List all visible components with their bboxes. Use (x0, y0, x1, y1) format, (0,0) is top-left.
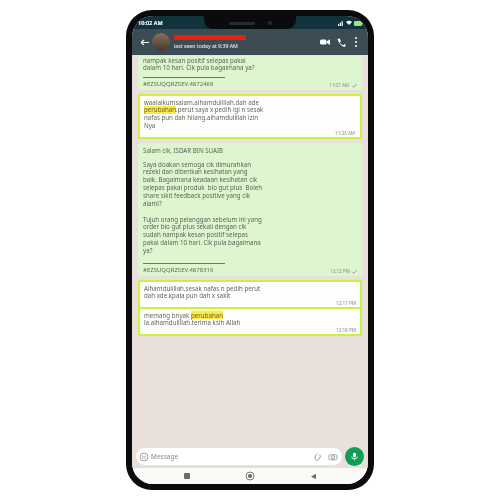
staticText: #EZSUQQRZSEV.4878316 (143, 266, 214, 274)
button[interactable]: Voice call (333, 34, 349, 50)
button[interactable]: last seen today at 9:39 AM (174, 35, 317, 49)
staticText: 12:12 PM (330, 268, 350, 274)
staticText: 10:02 AM (138, 19, 163, 27)
button[interactable]: Voice message (345, 447, 364, 466)
staticText: 11:23 AM (335, 130, 356, 136)
button[interactable]: Back (137, 35, 151, 49)
button[interactable]: nampak kesan positif selepas pakai dalam… (143, 56, 357, 88)
button[interactable]: Back (305, 468, 321, 484)
button[interactable]: More options (349, 35, 363, 49)
staticText: last seen today at 9:39 AM (174, 42, 238, 49)
staticText: 12:18 PM (336, 327, 356, 333)
staticText: memang bnyak perubahan la.alhamdulillah.… (144, 311, 241, 327)
button[interactable]: waalaikumsalam.alhamdulillah.dah ade per… (144, 98, 356, 136)
button[interactable]: Recents (179, 468, 195, 484)
staticText: nampak kesan positif selepas pakai dalam… (143, 56, 255, 72)
button[interactable]: memang bnyak perubahan la.alhamdulillah.… (144, 311, 356, 333)
staticText: Message (151, 452, 179, 461)
staticText: waalaikumsalam.alhamdulillah.dah ade per… (144, 98, 264, 130)
button[interactable]: Profile photo (152, 33, 170, 51)
staticText: 12:17 PM (336, 300, 356, 306)
staticText: Alhamdulillah.sesak nafas n pedih perut … (144, 284, 261, 300)
button[interactable]: Home (242, 468, 258, 484)
button[interactable]: Attach (312, 451, 323, 462)
staticText: 11:07 AM (329, 82, 350, 88)
staticText: Salam cik, ISDAR BIN SUAIB (143, 146, 224, 154)
button[interactable]: Camera (327, 451, 338, 462)
button[interactable]: Video call (317, 34, 333, 50)
staticText: #EZSUQQRZSEV.4872469 (143, 80, 214, 88)
staticText: Tujuh orang pelanggan sebelum ini yang o… (143, 215, 262, 255)
button[interactable]: Message (140, 448, 338, 465)
button[interactable]: Alhamdulillah.sesak nafas n pedih perut … (144, 284, 356, 306)
staticText: Saya doakan semoga cik dimurahkan rezeki… (143, 160, 263, 208)
button[interactable]: Salam cik, ISDAR BIN SUAIB (143, 146, 357, 274)
